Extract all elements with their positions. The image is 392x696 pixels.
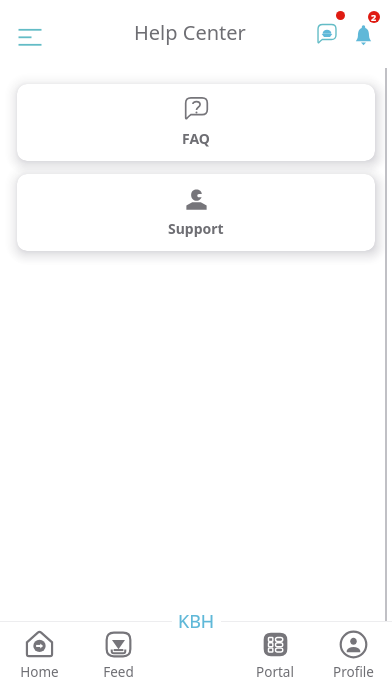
staticText: KBH <box>178 609 215 634</box>
staticText: FAQ <box>182 129 210 148</box>
button[interactable]: Profile <box>314 630 392 687</box>
button[interactable]: FAQ <box>17 84 375 161</box>
staticText: Portal <box>256 663 294 681</box>
button[interactable]: Menu <box>8 16 52 60</box>
button[interactable]: Messages <box>309 22 345 58</box>
staticText: Home <box>20 663 59 681</box>
staticText: Feed <box>103 663 134 681</box>
button[interactable]: Feed <box>79 630 158 687</box>
staticText: Help Center <box>134 19 246 46</box>
staticText: 2 <box>371 11 377 23</box>
button[interactable]: Home <box>0 630 79 687</box>
button[interactable]: Notifications <box>345 22 381 58</box>
staticText: Support <box>168 219 224 238</box>
button[interactable]: Portal <box>236 630 314 687</box>
staticText: Profile <box>333 663 374 681</box>
button[interactable]: Support <box>17 174 375 251</box>
